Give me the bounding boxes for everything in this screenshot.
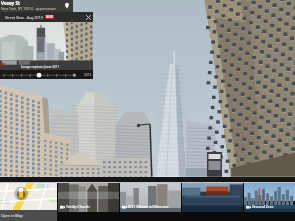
button[interactable]: Street View - Aug 2013 <box>0 12 93 22</box>
other: Place marker <box>61 0 73 12</box>
staticText: 9/11 Memorial Museum <box>128 204 169 209</box>
staticText: Vesey St <box>1 0 20 6</box>
staticText: Trinity Church <box>66 204 90 209</box>
staticText: NEW <box>46 15 53 19</box>
staticText: Open in Map <box>1 213 23 218</box>
button[interactable]: 9/11 Memorial Museum <box>120 183 181 221</box>
button[interactable]: Open in Map <box>0 183 57 221</box>
staticText: Ground Zero <box>252 204 274 209</box>
button[interactable]: 2013 <box>0 70 93 79</box>
button[interactable]: Trinity Church <box>58 183 119 221</box>
staticText: Image capture: June 2011 <box>21 65 60 69</box>
button[interactable] <box>182 183 243 221</box>
button[interactable]: Vesey St <box>0 0 73 12</box>
staticText: New York, NY 10014 - approximate address <box>1 6 61 12</box>
staticText: 2013 <box>84 73 92 77</box>
staticText: Street View - Aug 2013 <box>5 15 43 20</box>
button[interactable]: Close <box>83 12 93 22</box>
button[interactable]: Ground Zero <box>244 183 295 221</box>
